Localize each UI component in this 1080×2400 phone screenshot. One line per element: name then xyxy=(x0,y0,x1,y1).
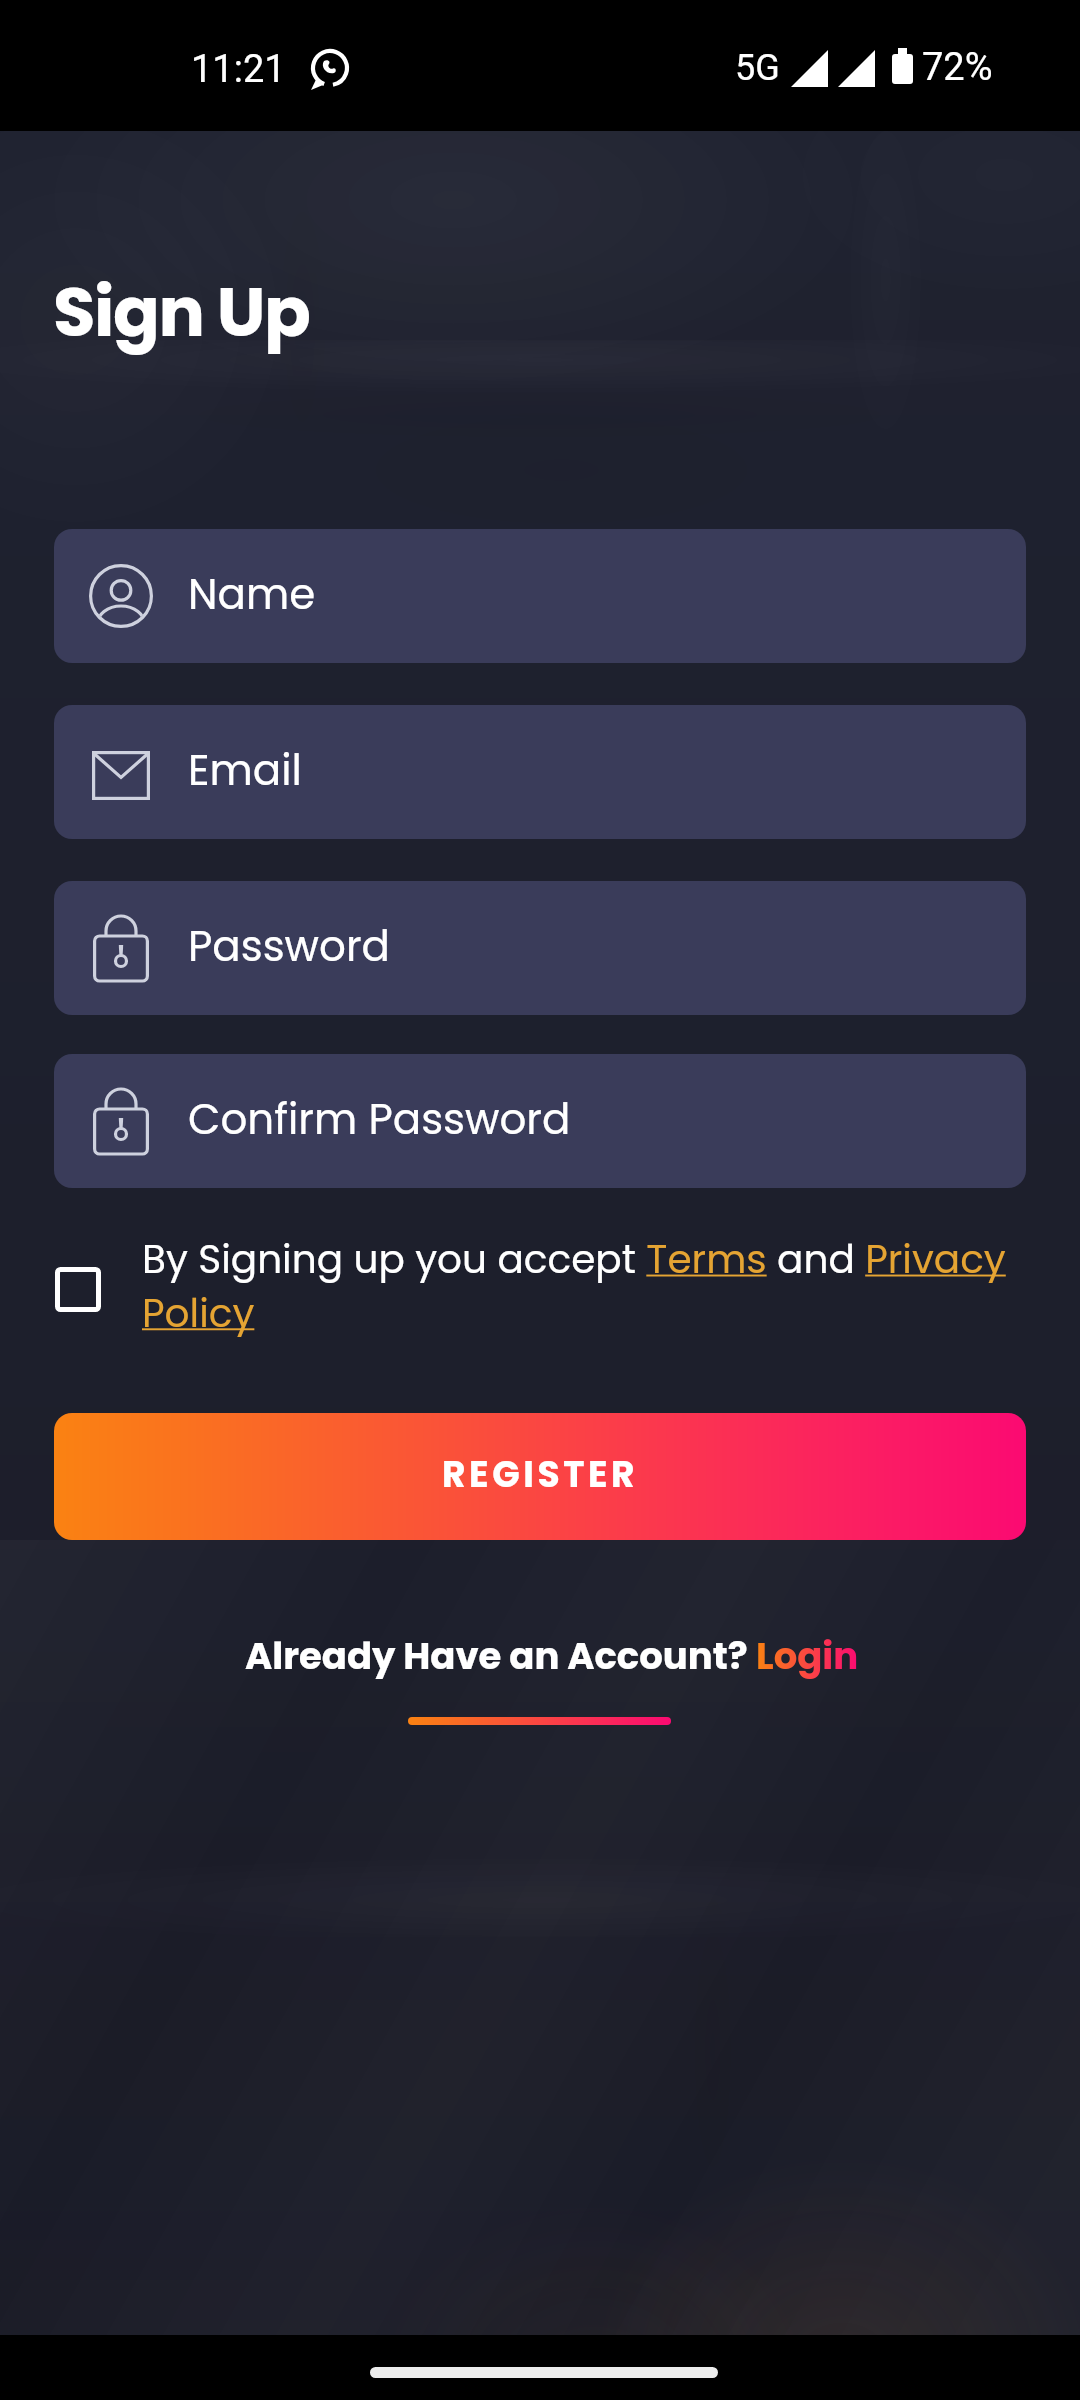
staticText: Sign Up xyxy=(53,264,310,361)
button[interactable]: Email xyxy=(54,705,1026,839)
staticText: 5G xyxy=(735,47,780,89)
staticText: REGISTER xyxy=(442,1449,639,1499)
button[interactable]: Accept terms and conditions xyxy=(55,1267,101,1312)
staticText: Password xyxy=(188,917,390,976)
staticText: 72% xyxy=(922,45,993,90)
button[interactable]: By Signing up you accept Terms and Priva… xyxy=(142,1232,1042,1340)
staticText: 11:21 xyxy=(191,47,286,92)
staticText: Name xyxy=(188,565,316,624)
staticText: Confirm Password xyxy=(188,1090,571,1149)
staticText: Login xyxy=(756,1630,859,1682)
button[interactable]: Already Have an Account? xyxy=(12,1630,1080,1682)
button[interactable]: Name xyxy=(54,529,1026,663)
button[interactable]: REGISTER xyxy=(54,1413,1026,1540)
staticText: Already Have an Account? xyxy=(245,1630,756,1682)
button[interactable]: Confirm Password xyxy=(54,1054,1026,1188)
staticText: Email xyxy=(188,741,302,800)
button[interactable]: Password xyxy=(54,881,1026,1015)
